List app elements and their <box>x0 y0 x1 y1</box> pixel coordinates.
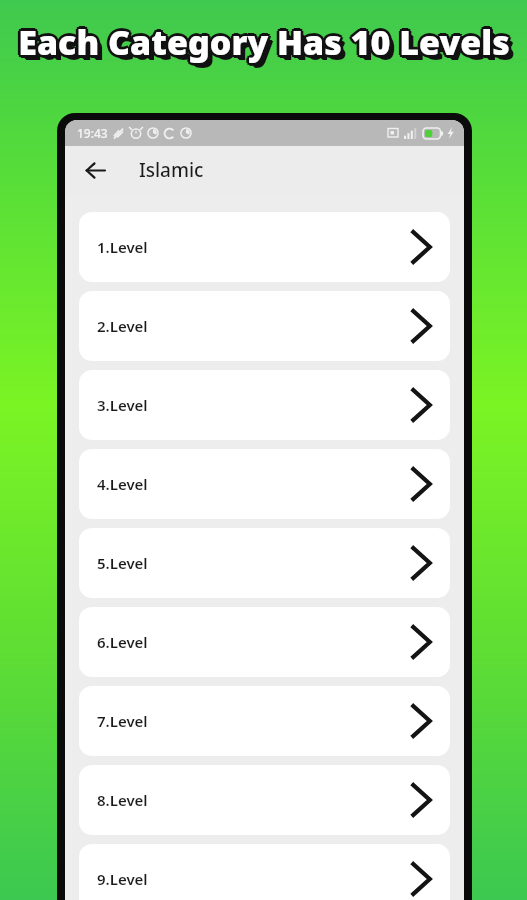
staticText: Each Category Has 10 Levels <box>15 19 507 65</box>
staticText: 8.Level <box>97 790 148 810</box>
button[interactable]: 2.Level <box>79 291 450 361</box>
staticText: Each Category Has 10 Levels <box>18 16 510 62</box>
button[interactable]: 7.Level <box>79 686 450 756</box>
staticText: Each Category Has 10 Levels <box>16 17 508 63</box>
button[interactable]: 8.Level <box>79 765 450 835</box>
staticText: 6.Level <box>97 632 148 652</box>
staticText: Each Category Has 10 Levels <box>16 21 508 67</box>
staticText: Islamic <box>139 157 204 183</box>
staticText: Each Category Has 10 Levels <box>22 23 514 69</box>
staticText: Each Category Has 10 Levels <box>18 19 510 65</box>
staticText: 2.Level <box>97 316 148 336</box>
staticText: Each Category Has 10 Levels <box>21 19 513 65</box>
staticText: 3.Level <box>97 395 148 415</box>
staticText: Each Category Has 10 Levels <box>20 21 512 67</box>
staticText: Each Category Has 10 Levels <box>20 17 512 63</box>
button[interactable]: 3.Level <box>79 370 450 440</box>
staticText: 9.Level <box>97 869 148 889</box>
button[interactable]: Back <box>75 150 115 190</box>
button[interactable]: 5.Level <box>79 528 450 598</box>
staticText: 1.Level <box>97 237 148 257</box>
staticText: 4.Level <box>97 474 148 494</box>
button[interactable]: 6.Level <box>79 607 450 677</box>
staticText: 7.Level <box>97 711 148 731</box>
button[interactable]: 4.Level <box>79 449 450 519</box>
button[interactable]: 1.Level <box>79 212 450 282</box>
button[interactable]: 9.Level <box>79 844 450 900</box>
staticText: 19:43 <box>77 125 108 141</box>
staticText: Each Category Has 10 Levels <box>23 24 515 70</box>
staticText: Each Category Has 10 Levels <box>18 22 510 68</box>
staticText: 5.Level <box>97 553 148 573</box>
